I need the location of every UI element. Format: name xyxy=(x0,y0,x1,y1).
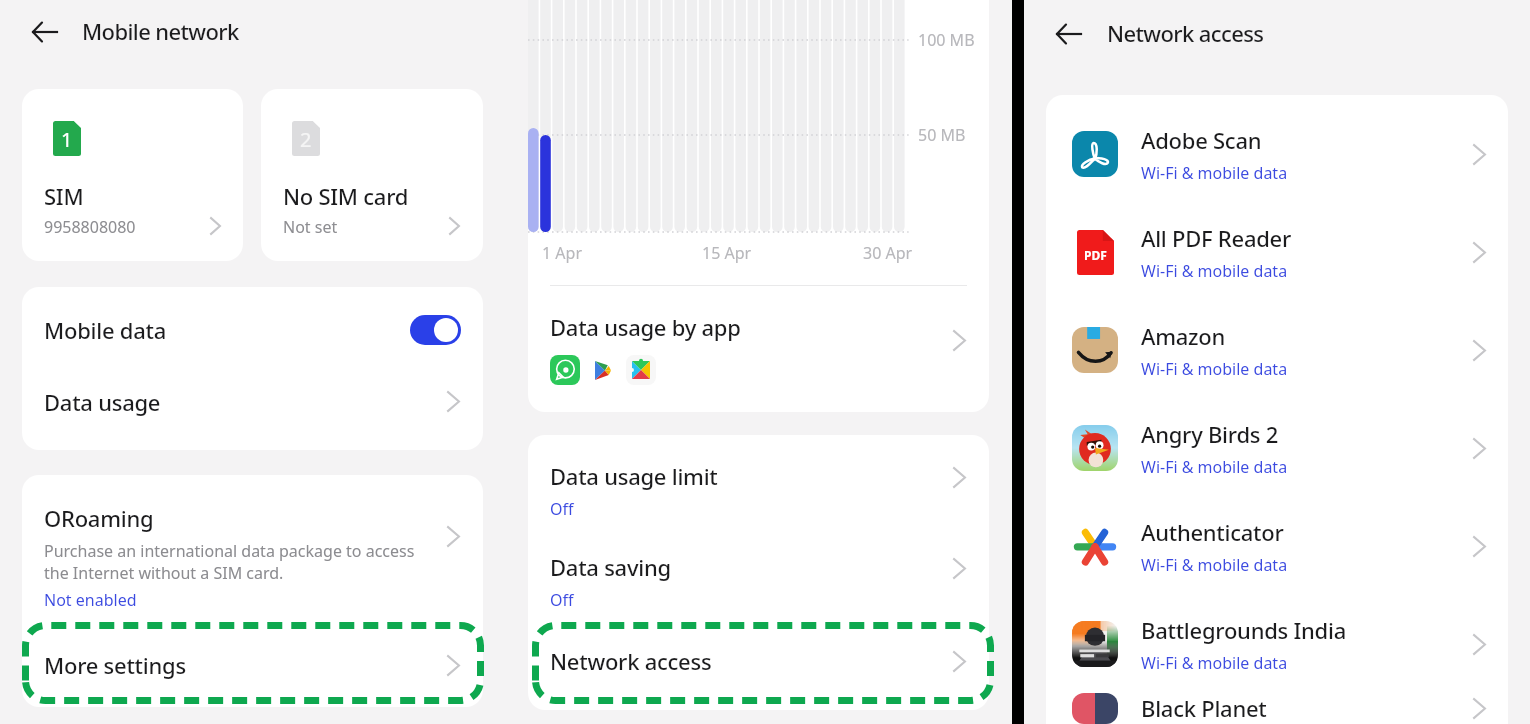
staticText: 15 Apr xyxy=(702,242,752,264)
button[interactable]: Back xyxy=(1046,11,1091,56)
staticText: 2 xyxy=(300,126,312,153)
staticText: Off xyxy=(550,498,574,520)
staticText: Wi-Fi & mobile data xyxy=(1141,456,1288,478)
staticText: Data usage by app xyxy=(550,312,741,342)
button[interactable]: Authenticator xyxy=(1046,497,1508,595)
button[interactable]: Data saving xyxy=(528,531,989,616)
staticText: Wi-Fi & mobile data xyxy=(1141,358,1288,380)
staticText: Amazon xyxy=(1141,321,1226,351)
staticText: Mobile data xyxy=(44,315,166,345)
button[interactable]: PDF xyxy=(1046,203,1508,301)
staticText: Wi-Fi & mobile data xyxy=(1141,652,1288,674)
staticText: 1 xyxy=(61,126,73,153)
button[interactable]: Black Planet xyxy=(1046,693,1508,724)
staticText: All PDF Reader xyxy=(1141,223,1292,253)
staticText: Wi-Fi & mobile data xyxy=(1141,554,1288,576)
staticText: Data usage limit xyxy=(550,461,718,491)
button[interactable]: Mobile data xyxy=(22,287,483,373)
button[interactable]: 1 xyxy=(22,89,243,261)
staticText: 1 Apr xyxy=(542,242,582,264)
staticText: Not set xyxy=(283,216,338,238)
staticText: Angry Birds 2 xyxy=(1141,419,1279,449)
staticText: No SIM card xyxy=(283,181,409,211)
staticText: Off xyxy=(550,589,574,611)
button[interactable]: ORoaming xyxy=(22,475,483,611)
staticText: Not enabled xyxy=(44,589,137,611)
staticText: ORoaming xyxy=(44,503,154,533)
staticText: Adobe Scan xyxy=(1141,125,1262,155)
staticText: SIM xyxy=(44,181,84,211)
staticText: Wi-Fi & mobile data xyxy=(1141,260,1288,282)
button[interactable]: Data usage limit xyxy=(528,435,989,531)
staticText: 50 MB xyxy=(918,124,966,146)
staticText: Data usage xyxy=(44,387,161,417)
staticText: 9958808080 xyxy=(44,216,136,238)
button[interactable]: More settings xyxy=(22,611,483,707)
button[interactable]: Data usage xyxy=(22,373,483,450)
staticText: 30 Apr xyxy=(863,242,913,264)
button[interactable]: Amazon xyxy=(1046,301,1508,399)
staticText: Network access xyxy=(1107,18,1264,48)
button[interactable]: Data usage by app xyxy=(528,286,989,412)
button[interactable]: Angry Birds 2 xyxy=(1046,399,1508,497)
button[interactable]: Network access xyxy=(528,616,989,710)
staticText: 100 MB xyxy=(918,29,975,51)
button[interactable]: Adobe Scan xyxy=(1046,105,1508,203)
button[interactable]: 2 xyxy=(261,89,483,261)
staticText: PDF xyxy=(1084,247,1107,263)
staticText: Data saving xyxy=(550,552,671,582)
staticText: Network access xyxy=(550,646,712,676)
button[interactable]: Battlegrounds India xyxy=(1046,595,1508,693)
staticText: More settings xyxy=(44,650,186,680)
staticText: Authenticator xyxy=(1141,517,1284,547)
staticText: Black Planet xyxy=(1141,693,1267,723)
staticText: Wi-Fi & mobile data xyxy=(1141,162,1288,184)
button[interactable]: Back xyxy=(22,9,67,54)
staticText: Purchase an international data package t… xyxy=(44,540,437,584)
staticText: Battlegrounds India xyxy=(1141,615,1346,645)
staticText: Mobile network xyxy=(82,16,239,46)
